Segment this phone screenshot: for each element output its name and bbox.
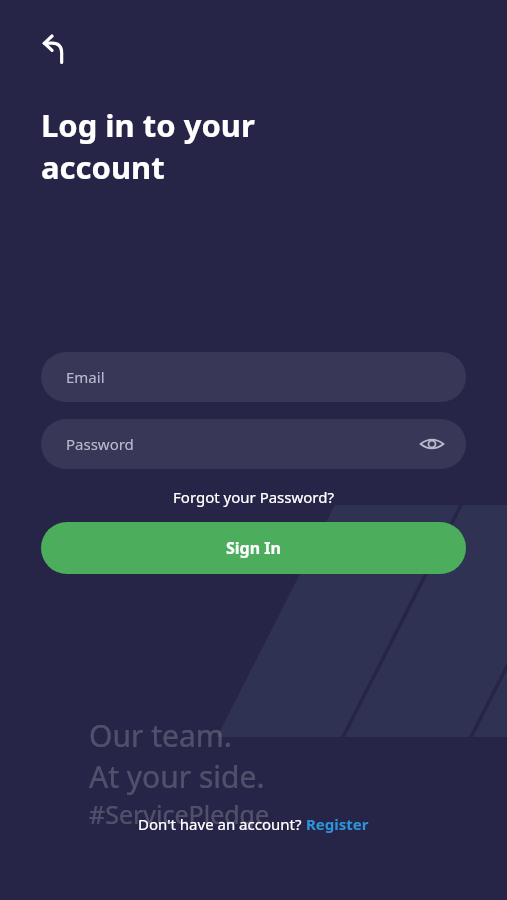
staticText: Register <box>306 814 369 834</box>
staticText: Don't have an account? <box>138 814 306 834</box>
staticText: #ServicePledge <box>89 797 270 831</box>
button[interactable]: Back <box>30 24 78 72</box>
button[interactable]: Password <box>41 419 466 469</box>
button[interactable]: Forgot your Password? <box>167 485 340 509</box>
button[interactable]: Sign In <box>41 522 466 574</box>
staticText: Our team. <box>89 715 232 756</box>
staticText: Email <box>66 367 105 387</box>
staticText: At your side. <box>89 756 265 797</box>
staticText: Forgot your Password? <box>173 487 334 507</box>
staticText: Password <box>66 434 134 454</box>
button[interactable]: Don't have an account? <box>130 811 377 837</box>
staticText: Sign In <box>226 537 281 559</box>
button[interactable]: Email <box>41 352 466 402</box>
staticText: Log in to your account <box>41 104 255 188</box>
button[interactable]: Show password <box>416 428 448 460</box>
